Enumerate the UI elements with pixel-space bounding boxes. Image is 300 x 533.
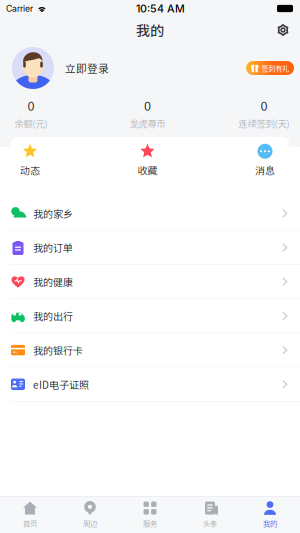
button[interactable]: 我的家乡 [0, 197, 300, 231]
button[interactable]: 动态 [11, 137, 49, 184]
staticText: 头条 [203, 518, 217, 529]
button[interactable]: 0 [5, 96, 57, 130]
staticText: 0 [144, 96, 151, 114]
button[interactable]: 立即登录 [12, 47, 109, 89]
button[interactable]: 我的 [240, 497, 300, 533]
staticText: 签到有礼 [261, 63, 289, 73]
button[interactable]: 服务 [120, 497, 180, 533]
staticText: 我的家乡 [33, 206, 73, 221]
staticText: 我的健康 [33, 274, 73, 289]
button[interactable]: 我的银行卡 [0, 333, 300, 368]
staticText: 0 [27, 96, 34, 114]
button[interactable]: eID电子证照 [0, 368, 300, 402]
button[interactable]: 首页 [0, 497, 60, 533]
staticText: 收藏 [137, 163, 157, 177]
staticText: 0 [260, 96, 267, 114]
staticText: 龙虎尊币 [129, 116, 165, 130]
staticText: eID电子证照 [33, 377, 89, 392]
staticText: 服务 [143, 518, 157, 529]
staticText: 首页 [23, 518, 37, 529]
staticText: 周边 [83, 518, 97, 529]
staticText: 消息 [255, 163, 275, 177]
staticText: 我的订单 [33, 240, 73, 255]
button[interactable]: 我的健康 [0, 265, 300, 299]
button[interactable]: 消息 [246, 137, 284, 184]
button[interactable]: 周边 [60, 497, 120, 533]
staticText: Carrier [6, 3, 33, 14]
staticText: 动态 [20, 163, 40, 177]
staticText: 10:54 AM [136, 2, 185, 15]
button[interactable]: 0 [238, 96, 290, 130]
staticText: 我的 [136, 20, 164, 40]
staticText: 我的 [263, 518, 277, 529]
button[interactable]: 签到有礼 [246, 61, 294, 75]
staticText: 连续签到(天) [238, 116, 289, 130]
staticText: 余额(元) [14, 116, 47, 130]
staticText: 我的出行 [33, 309, 73, 323]
button[interactable]: 我的出行 [0, 299, 300, 333]
staticText: 立即登录 [65, 60, 109, 76]
button[interactable]: 我的订单 [0, 231, 300, 265]
staticText: 我的银行卡 [33, 343, 83, 357]
button[interactable]: 头条 [180, 497, 240, 533]
button[interactable]: Settings [269, 17, 297, 43]
button[interactable]: 收藏 [128, 137, 166, 184]
button[interactable]: 0 [121, 96, 173, 130]
